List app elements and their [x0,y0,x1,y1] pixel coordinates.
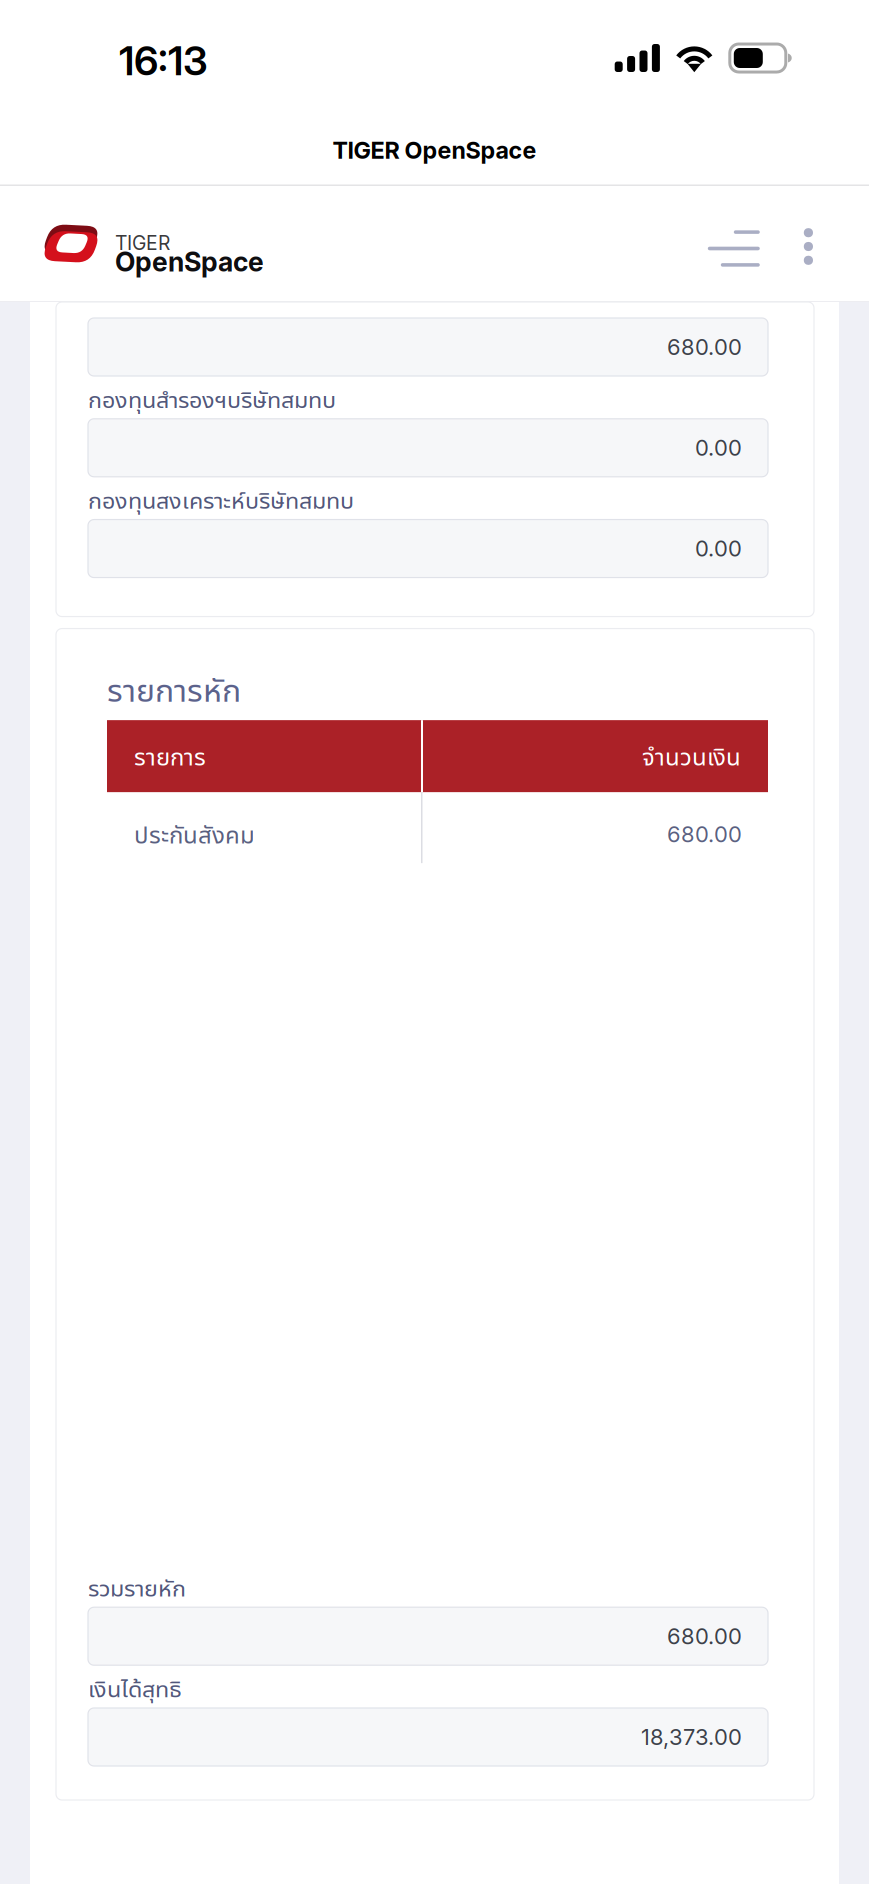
button[interactable]: More options [782,199,835,288]
staticText: OpenSpace [115,246,264,278]
staticText: 0.00 [695,434,742,461]
staticText: กองทุนสำรองฯบริษัทสมทบ [88,383,336,415]
staticText: รวมรายหัก [88,1571,186,1603]
staticText: TIGER [115,231,170,255]
staticText: ประกันสังคม [134,818,255,850]
staticText: เงินได้สุทธิ [88,1672,182,1704]
staticText: 680.00 [667,1623,742,1649]
staticText: รายการ [134,740,206,772]
staticText: 16:13 [119,37,208,85]
staticText: 0.00 [695,535,742,562]
staticText: TIGER OpenSpace [332,136,536,164]
button[interactable]: Menu [686,199,782,288]
staticText: รายการหัก [107,668,241,711]
staticText: จำนวนเงิน [642,740,741,772]
staticText: 680.00 [667,334,742,360]
staticText: กองทุนสงเคราะห์บริษัทสมทบ [88,484,354,516]
staticText: 680.00 [667,821,742,847]
staticText: 18,373.00 [641,1724,742,1750]
